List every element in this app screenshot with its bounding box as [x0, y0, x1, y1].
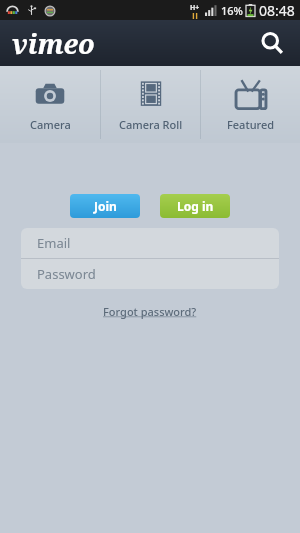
- staticText: Featured: [227, 117, 275, 132]
- button[interactable]: Email: [21, 228, 279, 258]
- button[interactable]: Featured: [201, 66, 300, 143]
- button[interactable]: Camera Roll: [101, 66, 200, 143]
- button[interactable]: Forgot password?: [97, 302, 203, 321]
- staticText: vimeo: [12, 25, 95, 62]
- staticText: Log in: [177, 198, 214, 214]
- staticText: H+: [190, 3, 200, 13]
- button[interactable]: Join: [70, 194, 140, 218]
- staticText: 16%: [221, 3, 243, 18]
- button[interactable]: Search: [252, 23, 292, 63]
- button[interactable]: Password: [21, 259, 279, 289]
- staticText: Camera: [30, 117, 71, 132]
- staticText: Password: [37, 265, 96, 283]
- button[interactable]: Log in: [160, 194, 230, 218]
- staticText: 08:48: [259, 1, 295, 20]
- staticText: Join: [94, 198, 117, 214]
- staticText: Camera Roll: [119, 117, 183, 132]
- staticText: Email: [37, 234, 71, 252]
- button[interactable]: Camera: [0, 66, 100, 143]
- staticText: Forgot password?: [103, 304, 197, 319]
